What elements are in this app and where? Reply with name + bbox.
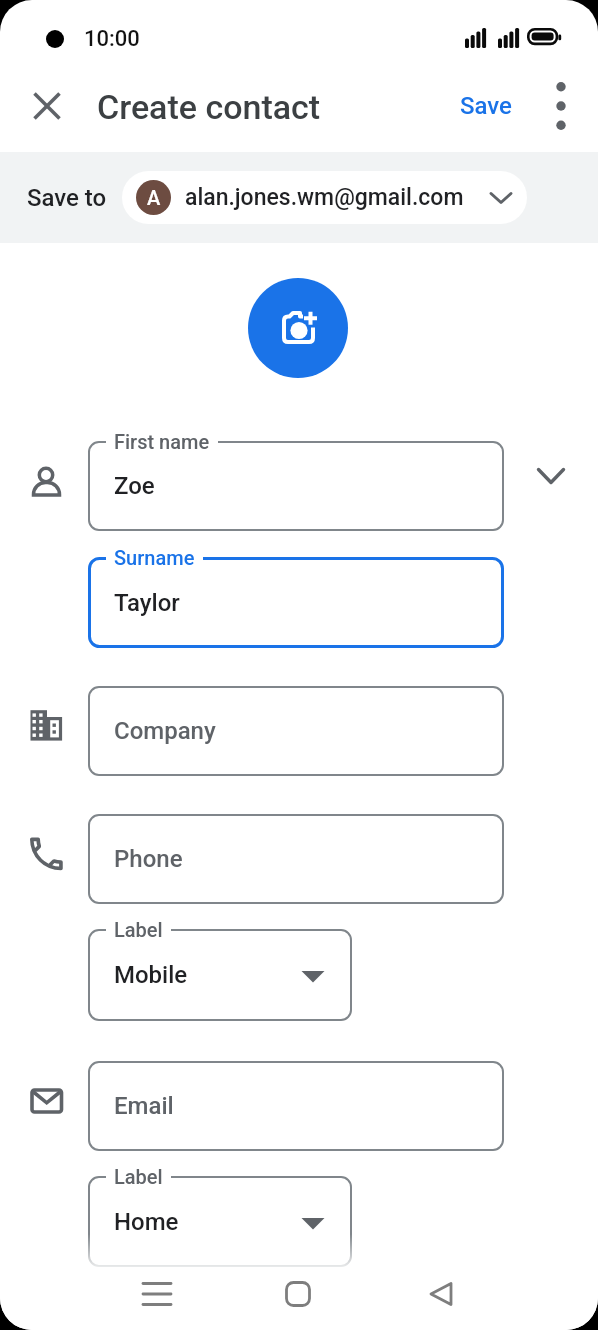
staticText: Phone xyxy=(114,845,183,873)
button[interactable] xyxy=(278,1274,318,1314)
staticText: alan.jones.wm@gmail.com xyxy=(185,184,464,211)
button[interactable] xyxy=(88,1176,352,1267)
button[interactable] xyxy=(88,814,504,904)
button[interactable] xyxy=(88,557,504,648)
button[interactable] xyxy=(88,1061,504,1151)
button[interactable]: Save xyxy=(448,82,524,130)
staticText: Company xyxy=(114,717,216,745)
staticText: Save to xyxy=(27,184,107,212)
staticText: Mobile xyxy=(114,961,188,989)
staticText: Label xyxy=(114,918,163,941)
button[interactable]: A xyxy=(122,171,527,224)
staticText: Create contact xyxy=(97,87,321,125)
staticText: Zoe xyxy=(114,472,155,500)
button[interactable] xyxy=(88,441,504,531)
button[interactable] xyxy=(88,686,504,776)
button[interactable] xyxy=(545,78,577,134)
button[interactable] xyxy=(536,466,566,488)
staticText: Email xyxy=(114,1092,174,1120)
staticText: Taylor xyxy=(114,589,180,617)
button[interactable] xyxy=(26,85,68,127)
staticText: Save xyxy=(460,92,512,120)
staticText: 10:00 xyxy=(84,26,140,52)
staticText: First name xyxy=(114,430,210,453)
button[interactable] xyxy=(137,1274,177,1314)
button[interactable] xyxy=(248,278,348,378)
button[interactable] xyxy=(88,929,352,1021)
staticText: Surname xyxy=(114,546,195,569)
staticText: Label xyxy=(114,1165,163,1188)
button[interactable] xyxy=(421,1274,461,1314)
staticText: A xyxy=(147,186,161,209)
staticText: Home xyxy=(114,1208,179,1236)
